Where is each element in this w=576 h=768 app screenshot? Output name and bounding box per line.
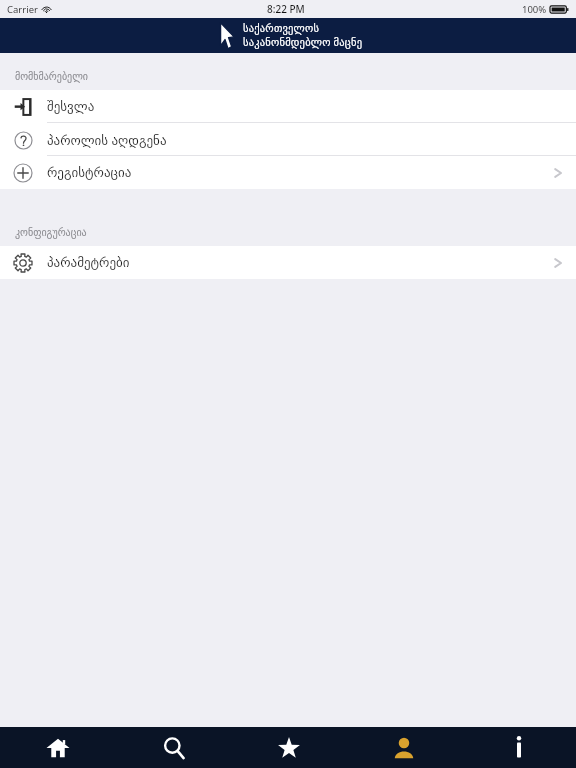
staticText: Carrier [7,3,38,16]
staticText: საკანონმდებლო მაცნე [243,35,363,49]
button[interactable]: Home [0,727,116,768]
staticText: მომხმარებელი [15,71,88,83]
button[interactable]: Info [461,727,576,768]
staticText: შესვლა [47,99,95,114]
staticText: პაროლის აღდგენა [47,131,167,149]
staticText: პარამეტრები [47,255,130,270]
staticText: 8:22 PM [267,2,305,16]
button[interactable]: შესვლა [0,90,576,123]
button[interactable]: Search [116,727,231,768]
button[interactable]: პარამეტრები [0,246,576,279]
button[interactable]: პაროლის აღდგენა [0,123,576,156]
staticText: საქართველოს [243,22,320,34]
button[interactable]: Favorites [231,727,346,768]
staticText: კონფიგურაცია [15,227,87,239]
button[interactable]: რეგისტრაცია [0,156,576,189]
staticText: რეგისტრაცია [47,165,132,180]
button[interactable]: Profile [346,727,461,768]
staticText: 100% [522,3,547,16]
